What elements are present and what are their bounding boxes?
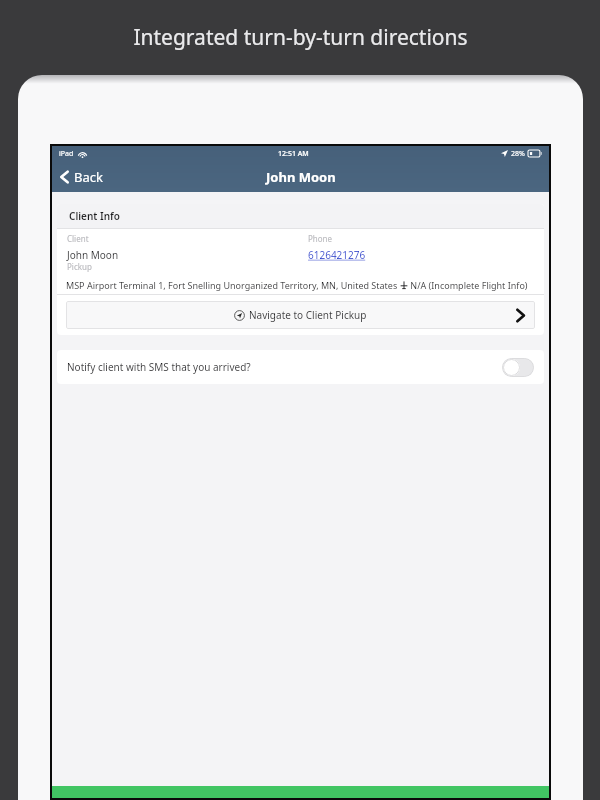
staticText: iPad bbox=[59, 149, 74, 159]
staticText: John Moon bbox=[67, 248, 119, 262]
staticText: Back bbox=[74, 168, 103, 186]
staticText: Integrated turn-by-turn directions bbox=[133, 23, 468, 52]
staticText: 28% bbox=[511, 149, 525, 159]
staticText: 12:51 AM bbox=[278, 149, 309, 159]
staticText: N/A (Incomplete Flight Info) bbox=[408, 279, 528, 291]
button[interactable]: 6126421276 bbox=[308, 248, 366, 262]
staticText: Navigate to Client Pickup bbox=[249, 308, 367, 322]
staticText: MSP Airport Terminal 1, Fort Snelling Un… bbox=[66, 279, 400, 291]
other: Notify client with SMS toggle bbox=[502, 358, 534, 377]
staticText: John Moon bbox=[266, 168, 336, 186]
staticText: Notify client with SMS that you arrived? bbox=[67, 360, 251, 374]
button[interactable]: Navigate to Client Pickup bbox=[66, 301, 535, 329]
staticText: Pickup bbox=[67, 261, 92, 272]
button[interactable]: Notify client with SMS that you arrived? bbox=[57, 350, 544, 384]
staticText: Phone bbox=[308, 233, 333, 244]
staticText: Client Info bbox=[69, 209, 120, 223]
button[interactable]: Back bbox=[57, 164, 106, 190]
staticText: Client bbox=[67, 233, 89, 244]
